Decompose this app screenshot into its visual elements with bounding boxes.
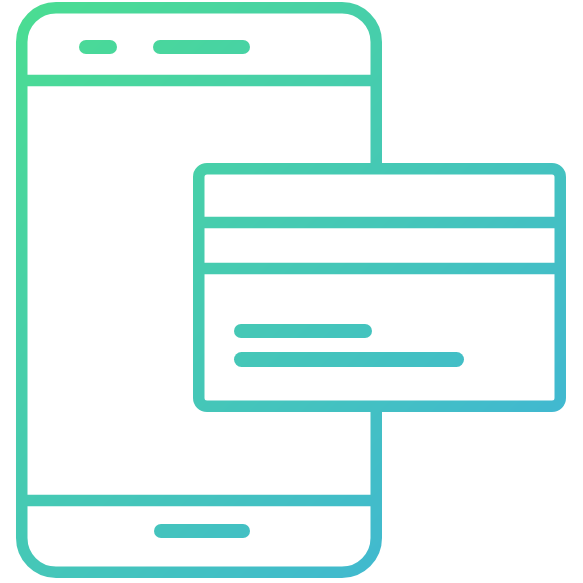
button[interactable]: Mobile payment form illustration	[0, 0, 583, 583]
